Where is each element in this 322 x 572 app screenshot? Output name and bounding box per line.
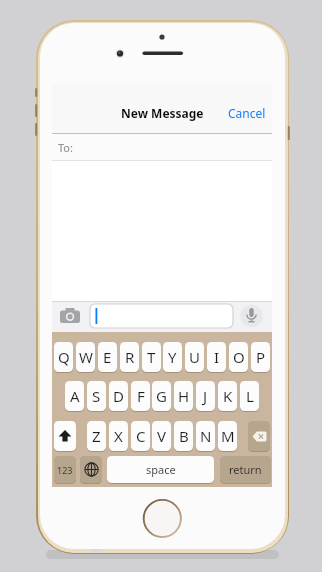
button[interactable] — [52, 134, 272, 161]
staticText: O — [233, 347, 245, 367]
button[interactable] — [58, 306, 82, 327]
staticText: New Message — [121, 105, 204, 121]
staticText: K — [223, 386, 233, 406]
button[interactable]: K — [218, 381, 237, 411]
staticText: space — [146, 462, 176, 477]
staticText: To: — [58, 140, 73, 155]
staticText: C — [136, 426, 146, 446]
staticText: Z — [92, 426, 101, 446]
button[interactable]: R — [120, 342, 139, 372]
button[interactable]: 123 — [54, 456, 76, 483]
button[interactable]: T — [142, 342, 161, 372]
button[interactable]: M — [218, 421, 237, 451]
button[interactable]: U — [185, 342, 204, 372]
button[interactable]: Cancel — [222, 101, 266, 125]
staticText: G — [156, 386, 167, 406]
staticText: L — [246, 386, 254, 406]
staticText: X — [114, 426, 123, 446]
button[interactable]: Q — [54, 342, 73, 372]
staticText: J — [203, 386, 208, 406]
button[interactable]: O — [229, 342, 248, 372]
staticText: I — [214, 347, 220, 367]
button[interactable]: G — [152, 381, 171, 411]
button[interactable]: Y — [163, 342, 182, 372]
staticText: S — [92, 386, 101, 406]
staticText: F — [137, 386, 145, 406]
button[interactable] — [90, 304, 233, 328]
staticText: A — [70, 386, 80, 406]
staticText: Y — [168, 347, 177, 367]
button[interactable] — [80, 456, 102, 483]
button[interactable]: return — [220, 456, 271, 483]
button[interactable]: J — [196, 381, 215, 411]
button[interactable]: I — [207, 342, 226, 372]
button[interactable]: S — [87, 381, 106, 411]
button[interactable]: C — [131, 421, 150, 451]
staticText: Q — [58, 347, 70, 367]
button[interactable]: E — [98, 342, 117, 372]
button[interactable] — [54, 421, 76, 451]
button[interactable] — [142, 499, 182, 539]
staticText: P — [256, 347, 266, 367]
button[interactable]: B — [174, 421, 193, 451]
button[interactable] — [248, 421, 270, 451]
button[interactable]: P — [251, 342, 270, 372]
staticText: return — [229, 462, 262, 477]
button[interactable]: F — [131, 381, 150, 411]
staticText: N — [200, 426, 212, 446]
staticText: V — [157, 426, 167, 446]
staticText: R — [125, 347, 135, 367]
button[interactable]: H — [174, 381, 193, 411]
button[interactable]: V — [152, 421, 171, 451]
staticText: B — [179, 426, 189, 446]
button[interactable]: D — [109, 381, 128, 411]
staticText: E — [103, 347, 112, 367]
button[interactable]: space — [107, 456, 214, 483]
button[interactable]: W — [76, 342, 95, 372]
button[interactable]: X — [109, 421, 128, 451]
staticText: T — [147, 347, 156, 367]
staticText: M — [221, 426, 235, 446]
staticText: D — [113, 386, 124, 406]
button[interactable] — [240, 304, 263, 327]
staticText: H — [178, 386, 190, 406]
button[interactable]: L — [240, 381, 259, 411]
button[interactable]: N — [196, 421, 215, 451]
button[interactable]: A — [65, 381, 84, 411]
staticText: 123 — [57, 464, 73, 476]
staticText: U — [189, 347, 200, 367]
button[interactable]: Z — [87, 421, 106, 451]
staticText: Cancel — [228, 105, 266, 121]
staticText: W — [79, 347, 93, 367]
